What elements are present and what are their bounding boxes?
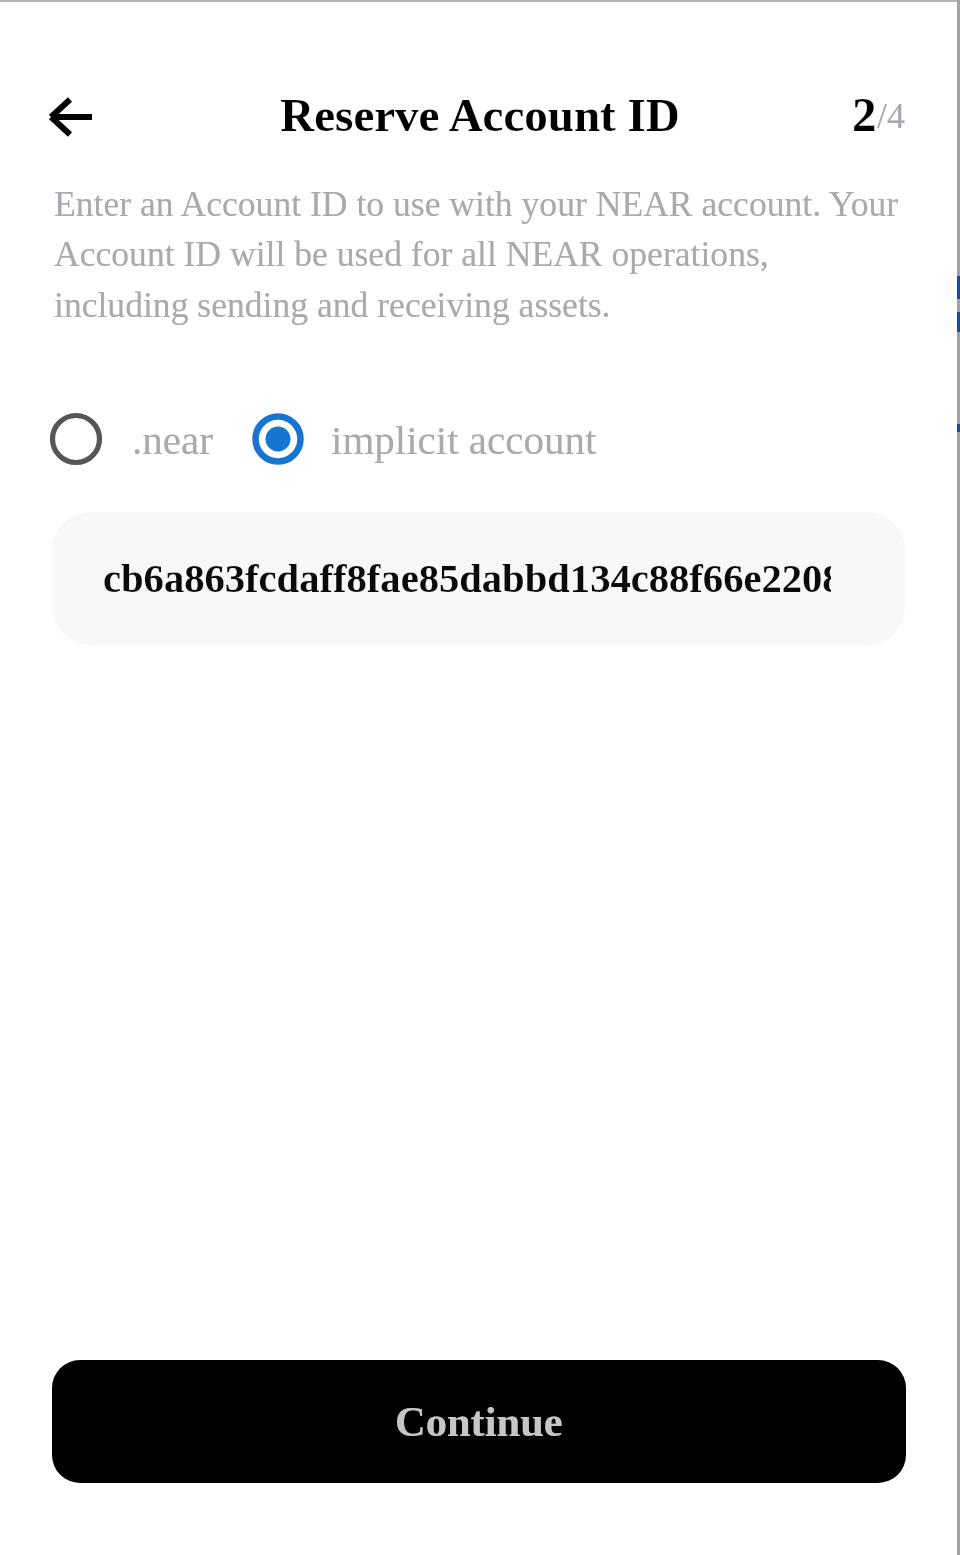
staticText: Continue — [395, 1398, 563, 1445]
button[interactable]: implicit account — [250, 408, 597, 470]
staticText: /4 — [877, 96, 906, 136]
staticText: implicit account — [331, 417, 597, 462]
button[interactable]: cb6a863fcdaff8fae85dabbd134c88f66e2208a4… — [52, 512, 905, 645]
staticText: 2 — [852, 87, 877, 141]
button[interactable]: Continue — [52, 1360, 906, 1483]
button[interactable]: Back — [31, 77, 111, 157]
staticText: cb6a863fcdaff8fae85dabbd134c88f66e2208a4… — [103, 556, 831, 601]
button[interactable]: .near — [48, 408, 213, 470]
staticText: .near — [132, 417, 213, 462]
staticText: Enter an Account ID to use with your NEA… — [54, 184, 912, 325]
staticText: Reserve Account ID — [0, 89, 960, 141]
